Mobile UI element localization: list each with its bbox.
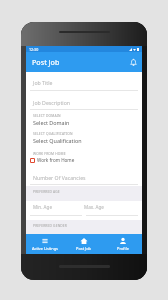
- staticText: Number Of Vacancies: [33, 174, 86, 181]
- button[interactable]: Post Job: [64, 234, 103, 254]
- button[interactable]: Work from Home: [30, 156, 75, 164]
- staticText: Work from Home: [37, 157, 75, 163]
- staticText: Profile: [117, 246, 129, 251]
- staticText: Post Job: [76, 246, 91, 251]
- button[interactable]: Profile: [103, 234, 142, 254]
- staticText: PREFERRED AGE: [33, 189, 60, 193]
- staticText: 12:30: [29, 47, 39, 52]
- staticText: Max. Age: [84, 204, 104, 210]
- staticText: WORK FROM HOME: [33, 151, 66, 155]
- staticText: Active Listings: [32, 246, 58, 251]
- staticText: PREFERRED GENDER: [33, 223, 68, 227]
- staticText: Job Title: [33, 79, 53, 86]
- staticText: Select Domain: [33, 119, 70, 126]
- staticText: Job Description: [33, 99, 71, 106]
- staticText: Select Qualification: [33, 137, 82, 144]
- staticText: Post Job: [32, 57, 60, 67]
- button[interactable]: Active Listings: [26, 234, 64, 254]
- staticText: Min. Age: [33, 204, 52, 210]
- staticText: SELECT DOMAIN: [33, 113, 61, 117]
- button[interactable]: Notifications: [125, 54, 141, 70]
- staticText: SELECT QUALIFICATION: [33, 131, 73, 135]
